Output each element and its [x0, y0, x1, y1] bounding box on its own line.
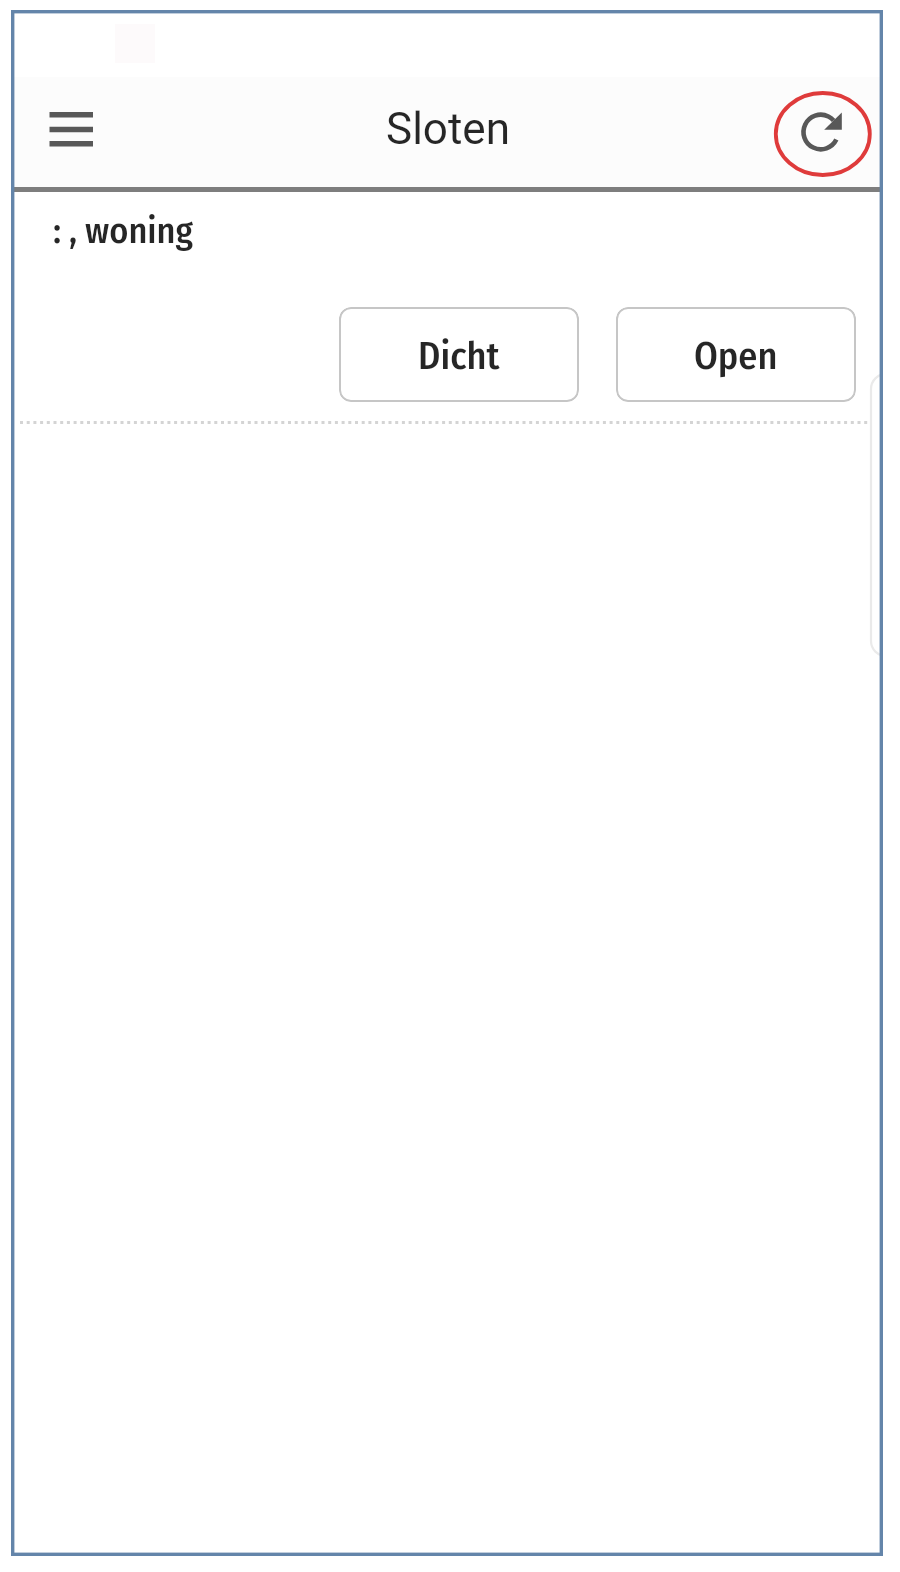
button[interactable]: Menu: [38, 98, 104, 160]
button[interactable]: Dicht: [339, 307, 579, 402]
staticText: Dicht: [418, 333, 500, 379]
staticText: Open: [694, 333, 778, 379]
staticText: Sloten: [386, 103, 510, 155]
button[interactable]: Refresh: [772, 90, 874, 180]
button[interactable]: Open: [616, 307, 856, 402]
staticText: : , woning: [53, 209, 194, 252]
